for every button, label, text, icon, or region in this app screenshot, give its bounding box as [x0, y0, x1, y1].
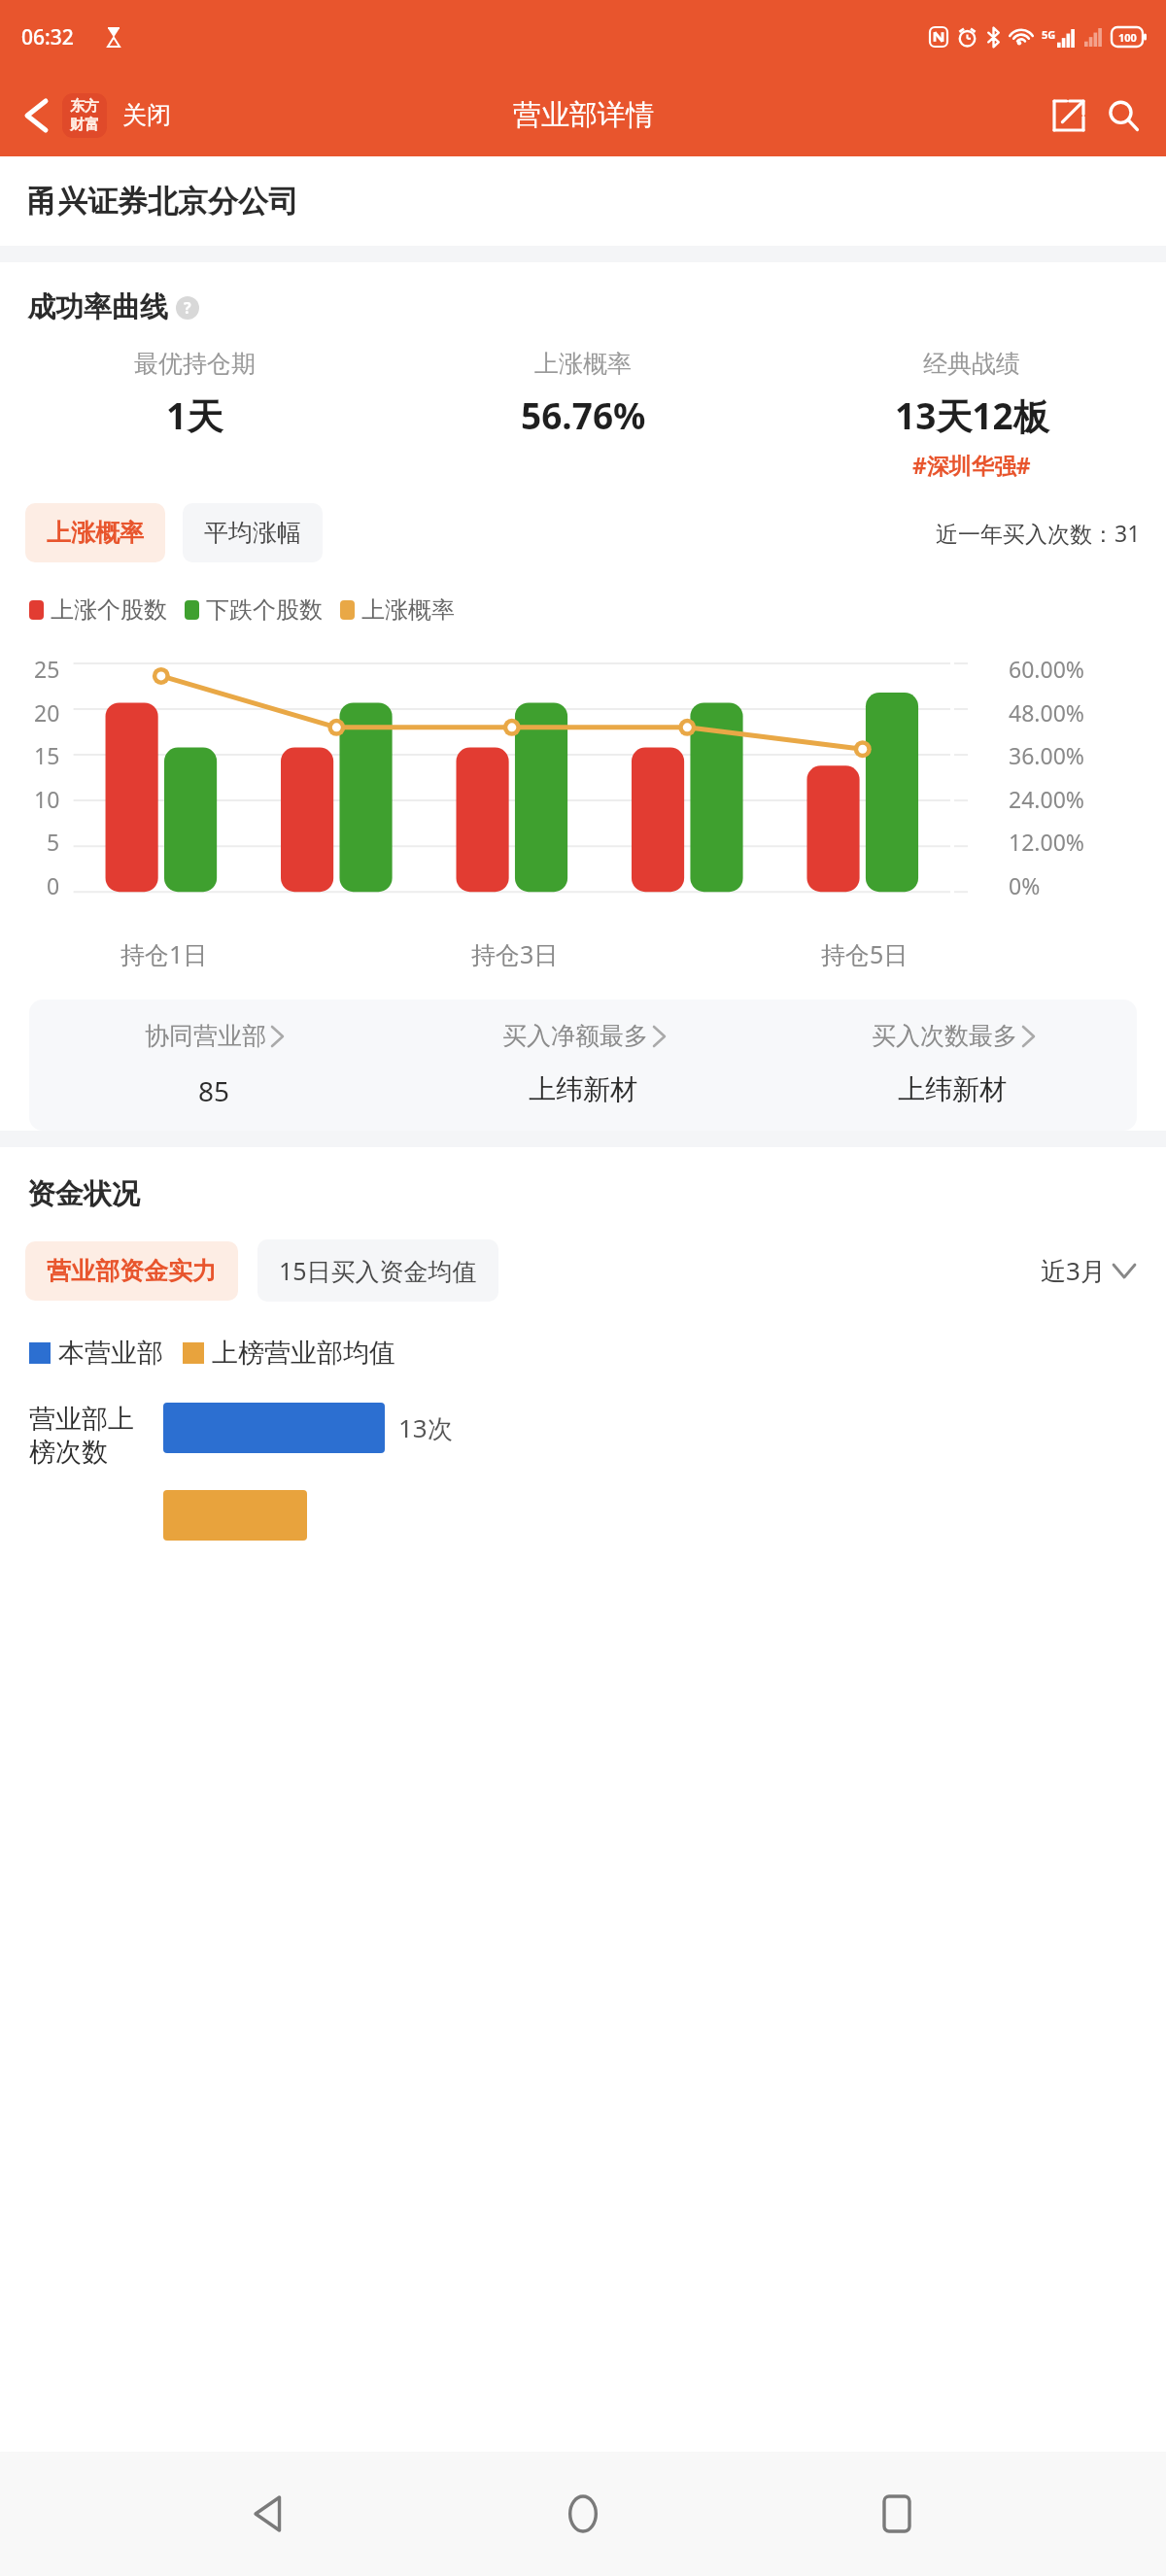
staticText: 买入净额最多 — [502, 1021, 648, 1051]
staticText: 100 — [1118, 30, 1137, 45]
staticText: 5G — [1042, 27, 1056, 42]
button[interactable]: 协同营业部 — [29, 1021, 398, 1109]
staticText: 20 — [34, 697, 60, 728]
staticText: 关闭 — [122, 100, 171, 130]
staticText: 85 — [198, 1072, 230, 1109]
button[interactable]: Back — [226, 2470, 314, 2558]
staticText: 25 — [34, 654, 60, 684]
staticText: 上涨概率 — [361, 595, 455, 625]
button[interactable]: Share — [1042, 88, 1096, 143]
staticText: 上涨概率 — [47, 518, 144, 548]
staticText: 06:32 — [21, 23, 74, 51]
staticText: 24.00% — [1009, 784, 1084, 814]
staticText: 资金状况 — [27, 1176, 140, 1212]
staticText: 近3月 — [1041, 1253, 1106, 1288]
staticText: 48.00% — [1009, 697, 1084, 728]
button[interactable]: Search — [1096, 88, 1150, 143]
staticText: 13次 — [398, 1410, 453, 1445]
staticText: 56.76% — [521, 390, 646, 439]
staticText: 0% — [1009, 870, 1041, 900]
button[interactable]: 东方财富 — [62, 93, 107, 138]
staticText: 上涨概率 — [534, 349, 632, 379]
staticText: 持仓5日 — [821, 937, 909, 970]
staticText: 15 — [34, 740, 60, 770]
button[interactable]: 近3月 — [1035, 1247, 1141, 1294]
staticText: 营业部上 — [29, 1403, 134, 1436]
staticText: 持仓1日 — [120, 937, 208, 970]
staticText: 榜次数 — [29, 1436, 108, 1469]
button[interactable]: 买入净额最多 — [398, 1021, 768, 1106]
button[interactable]: Home — [539, 2470, 627, 2558]
staticText: 上榜营业部均值 — [212, 1337, 395, 1370]
staticText: 营业部资金实力 — [47, 1256, 217, 1286]
staticText: 12.00% — [1009, 827, 1084, 857]
staticText: 60.00% — [1009, 654, 1084, 684]
staticText: 36.00% — [1009, 740, 1084, 770]
staticText: 0 — [47, 870, 60, 900]
button[interactable]: 15日买入资金均值 — [257, 1239, 498, 1302]
staticText: 最优持仓期 — [134, 349, 256, 379]
staticText: 持仓3日 — [471, 937, 559, 970]
button[interactable]: 营业部资金实力 — [25, 1241, 238, 1301]
button[interactable]: 关闭 — [119, 92, 175, 138]
staticText: 成功率曲线 — [27, 289, 168, 325]
button[interactable]: 上涨概率 — [25, 503, 165, 562]
staticText: 下跌个股数 — [206, 595, 323, 625]
staticText: #深圳华强# — [912, 450, 1031, 480]
staticText: 本营业部 — [58, 1337, 163, 1370]
staticText: 近一年买入次数：31 — [936, 518, 1141, 548]
staticText: 1天 — [166, 390, 223, 440]
staticText: 平均涨幅 — [204, 518, 301, 548]
staticText: 经典战绩 — [923, 349, 1020, 379]
staticText: 上纬新材 — [529, 1072, 637, 1106]
button[interactable]: 买入次数最多 — [768, 1021, 1137, 1106]
staticText: 财富 — [70, 116, 99, 134]
button[interactable]: Recents — [853, 2470, 941, 2558]
staticText: 甬兴证券北京分公司 — [27, 183, 298, 220]
staticText: 营业部详情 — [513, 97, 654, 133]
staticText: 上纬新材 — [898, 1072, 1007, 1106]
staticText: 买入次数最多 — [872, 1021, 1017, 1051]
staticText: ? — [184, 297, 191, 319]
staticText: 5 — [47, 827, 60, 857]
staticText: 上涨个股数 — [51, 595, 167, 625]
button[interactable]: 帮助 — [176, 296, 199, 320]
staticText: 15日买入资金均值 — [279, 1254, 477, 1287]
staticText: 13天12板 — [895, 390, 1049, 440]
button[interactable]: Back — [14, 93, 58, 138]
staticText: 东方 — [70, 97, 99, 116]
button[interactable]: 平均涨幅 — [183, 503, 323, 562]
staticText: 协同营业部 — [145, 1021, 266, 1051]
staticText: 10 — [34, 784, 60, 814]
